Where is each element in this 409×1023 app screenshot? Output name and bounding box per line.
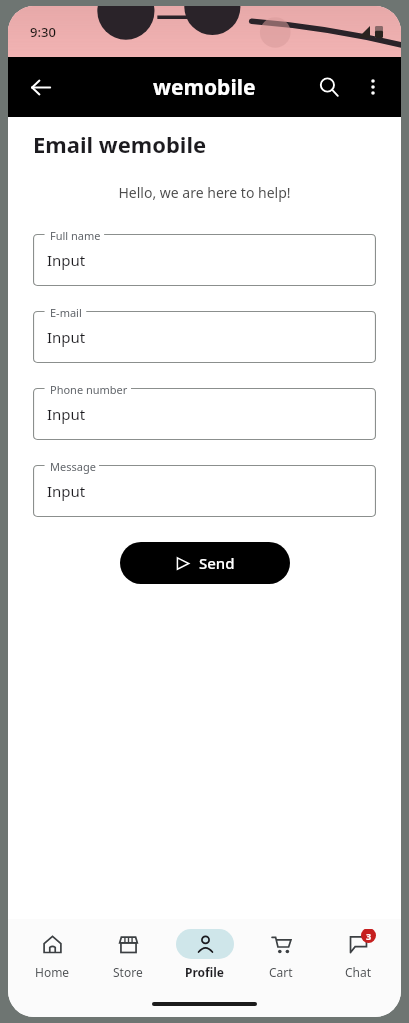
button[interactable]: 3 [325,927,391,982]
staticText: Hello, we are here to help! [8,183,401,202]
staticText: E-mail [50,305,82,320]
button[interactable]: Profile [172,927,238,982]
staticText: Input [47,327,86,347]
staticText: 3 [366,930,372,942]
staticText: Home [35,964,70,980]
staticText: Chat [345,964,372,980]
staticText: Send [199,553,235,573]
staticText: Message [50,459,96,474]
staticText: Input [47,481,86,501]
staticText: Phone number [50,382,128,397]
staticText: Input [47,404,86,424]
staticText: Email wemobile [33,129,207,159]
staticText: wemobile [153,73,256,102]
staticText: Full name [50,228,101,243]
staticText: Store [113,964,143,980]
button[interactable]: Home [19,927,85,982]
button[interactable]: Back [18,65,62,109]
staticText: 9:30 [30,23,56,41]
button[interactable]: Search [307,65,351,109]
button[interactable]: Cart [248,927,314,982]
button[interactable]: Send [120,542,290,584]
staticText: Input [47,250,86,270]
button[interactable]: More options [351,65,395,109]
staticText: Profile [185,964,225,980]
button[interactable]: Store [95,927,161,982]
staticText: Cart [269,964,293,980]
